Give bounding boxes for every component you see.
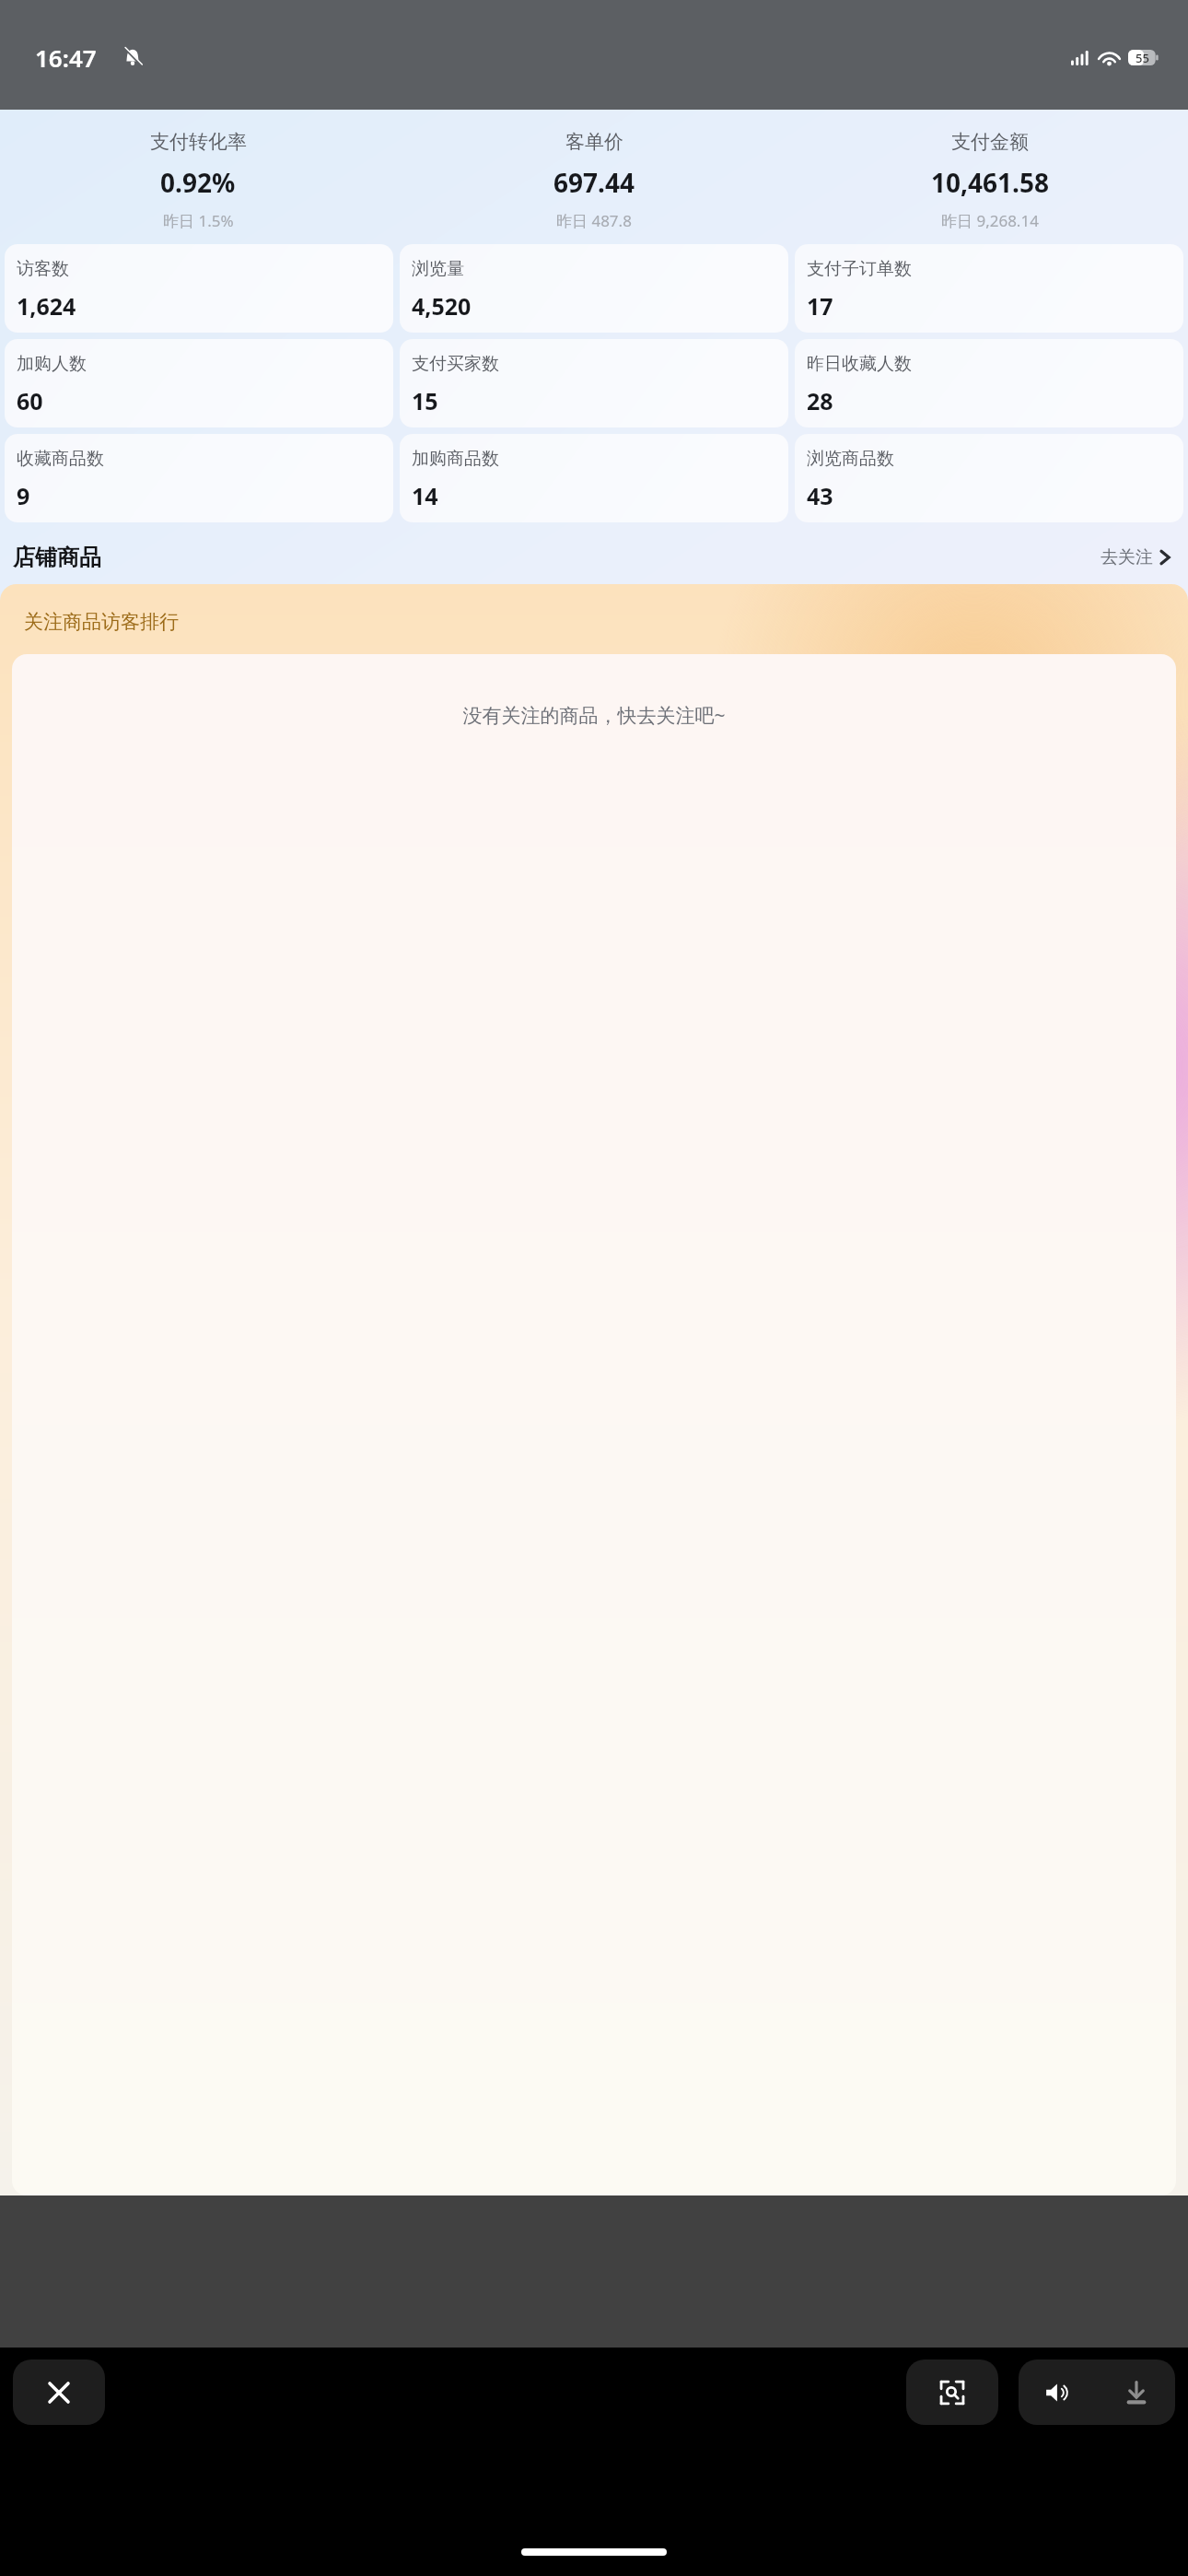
staticText: 0.92% <box>160 165 236 200</box>
staticText: 支付金额 <box>951 130 1029 154</box>
button[interactable]: 去关注 <box>1095 541 1175 574</box>
staticText: 697.44 <box>553 165 635 200</box>
button[interactable]: Scan <box>906 2359 998 2425</box>
staticText: 支付买家数 <box>412 353 499 375</box>
staticText: 17 <box>807 290 833 322</box>
staticText: 昨日 9,268.14 <box>941 210 1039 231</box>
button[interactable]: Volume <box>1019 2359 1097 2425</box>
button[interactable]: 访客数 <box>5 244 393 333</box>
staticText: 60 <box>17 385 43 416</box>
button[interactable]: 加购商品数 <box>400 434 788 522</box>
staticText: 客单价 <box>565 130 623 154</box>
staticText: 55 <box>1136 50 1149 65</box>
staticText: 店铺商品 <box>13 544 101 571</box>
button[interactable]: 收藏商品数 <box>5 434 393 522</box>
staticText: 浏览量 <box>412 258 464 280</box>
staticText: 28 <box>807 385 833 416</box>
button[interactable]: Download <box>1097 2359 1175 2425</box>
button[interactable]: 支付转化率 <box>0 110 396 244</box>
button[interactable]: 浏览量 <box>400 244 788 333</box>
staticText: 支付子订单数 <box>807 258 912 280</box>
button[interactable]: 支付买家数 <box>400 339 788 427</box>
button[interactable]: 浏览商品数 <box>795 434 1183 522</box>
staticText: 浏览商品数 <box>807 448 894 470</box>
button[interactable]: 昨日收藏人数 <box>795 339 1183 427</box>
staticText: 支付转化率 <box>150 130 247 154</box>
button[interactable]: 客单价 <box>396 110 792 244</box>
button[interactable]: 支付子订单数 <box>795 244 1183 333</box>
staticText: 15 <box>412 385 438 416</box>
staticText: 收藏商品数 <box>17 448 104 470</box>
staticText: 9 <box>17 480 30 511</box>
staticText: 加购人数 <box>17 353 87 375</box>
staticText: 昨日收藏人数 <box>807 353 912 375</box>
button[interactable]: 加购人数 <box>5 339 393 427</box>
staticText: 加购商品数 <box>412 448 499 470</box>
staticText: 关注商品访客排行 <box>24 610 179 634</box>
staticText: 16:47 <box>35 41 97 74</box>
staticText: 43 <box>807 480 833 511</box>
staticText: 昨日 1.5% <box>163 210 234 231</box>
button[interactable]: 支付金额 <box>792 110 1188 244</box>
staticText: 昨日 487.8 <box>556 210 632 231</box>
staticText: 没有关注的商品，快去关注吧~ <box>462 702 726 729</box>
staticText: 访客数 <box>17 258 69 280</box>
staticText: 10,461.58 <box>931 165 1049 200</box>
staticText: 4,520 <box>412 290 472 322</box>
staticText: 1,624 <box>17 290 76 322</box>
button[interactable]: Close <box>13 2359 105 2425</box>
staticText: 去关注 <box>1101 546 1153 568</box>
staticText: 14 <box>412 480 438 511</box>
